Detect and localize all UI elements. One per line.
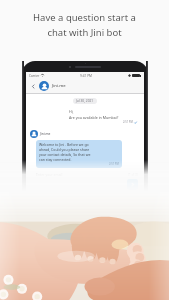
staticText: Welcome to Jini . Before we go (39, 142, 89, 147)
staticText: can stay connected. (39, 157, 72, 162)
staticText: Have a question start a (33, 11, 136, 24)
staticText: Jini.me (52, 83, 66, 89)
staticText: 9:41 PM (80, 74, 92, 78)
staticText: 2:51 PM (109, 162, 119, 166)
staticText: Carrier (29, 74, 40, 78)
staticText: Hi, (69, 109, 74, 114)
staticText: 2:51 PM (123, 120, 133, 124)
staticText: ahead, Could you please share (39, 147, 90, 152)
staticText: Are you available in Mumbai? (69, 115, 119, 120)
staticText: chat with Jini bot (47, 26, 122, 39)
button[interactable]: Back (29, 82, 38, 91)
staticText: Jul 30, 2021 (76, 99, 94, 103)
staticText: Jini.me (40, 132, 51, 136)
staticText: your contact details, So that we (39, 152, 91, 157)
